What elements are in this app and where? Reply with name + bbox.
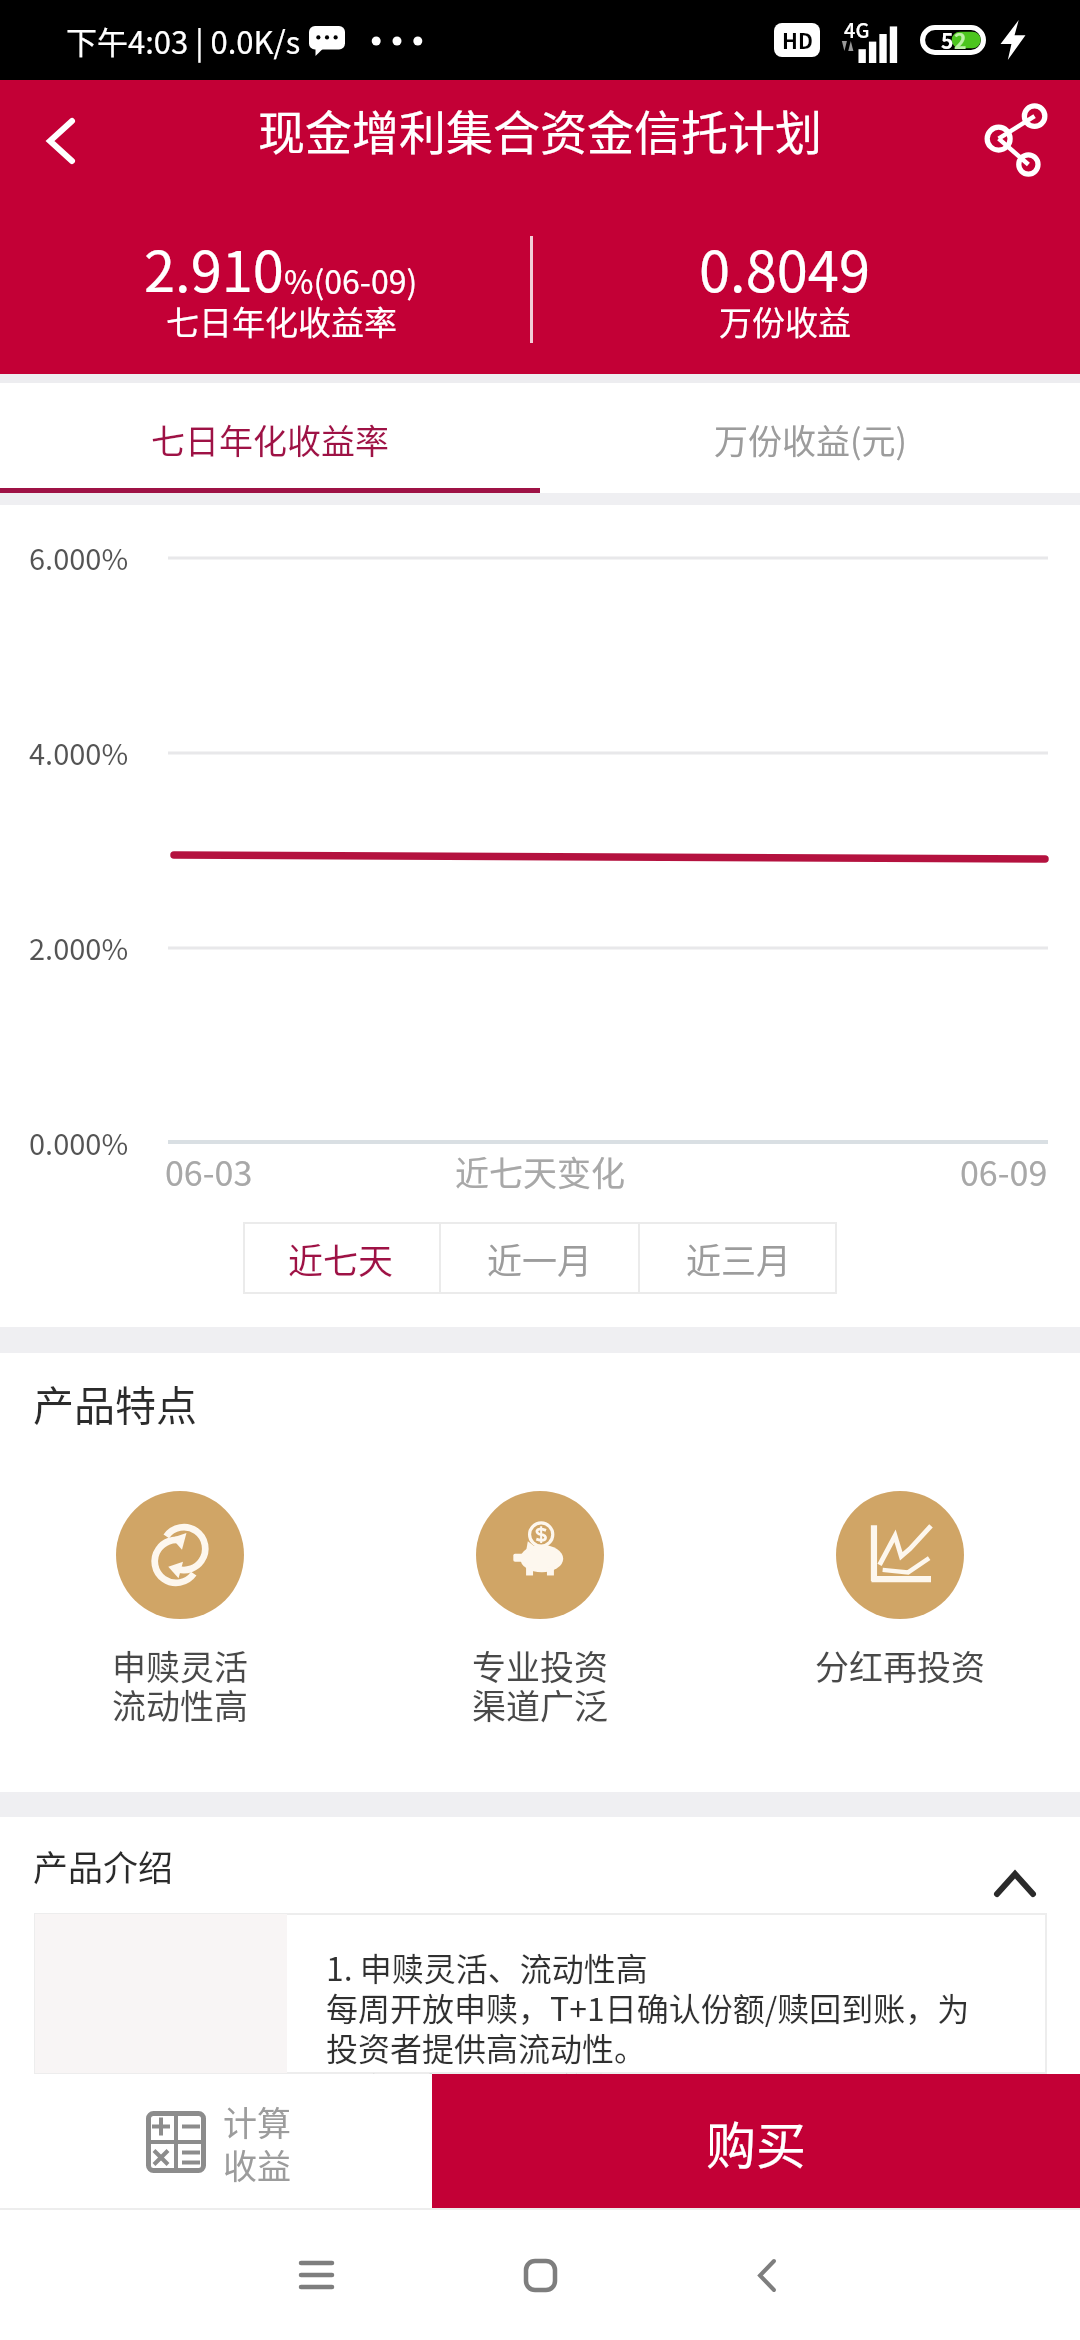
staticText: 2.910 [144,227,284,308]
staticText: 5 [941,25,954,55]
staticText: 产品介绍 [33,1840,174,1891]
staticText: 4G [844,15,870,44]
button[interactable]: Share [970,94,1062,186]
button[interactable]: 购买 [432,2074,1080,2210]
staticText: 现金增利集合资金信托计划 [258,95,822,163]
button[interactable]: Home [476,2210,604,2340]
staticText: 下午4:03 | 0.0K/s [66,18,301,63]
button[interactable]: 计算 收益 [146,2074,291,2210]
staticText: 2.000% [29,926,129,968]
staticText: 申赎灵活 流动性高 [112,1641,248,1729]
staticText: 06-03 [165,1147,253,1196]
staticText: %(06-09) [284,257,418,303]
staticText: 近三月 [686,1233,792,1284]
staticText: 06-09 [960,1147,1048,1196]
staticText: 万份收益 [719,297,851,345]
staticText: 近一月 [487,1233,593,1284]
staticText: 购买 [706,2106,806,2178]
staticText: 计算 收益 [223,2097,291,2188]
staticText: 专业投资 渠道广泛 [472,1641,608,1729]
staticText: 近七天 [288,1233,394,1284]
staticText: HD [782,25,813,55]
staticText: 0.8049 [699,227,870,308]
staticText: 1. 申赎灵活、流动性高 每周开放申赎，T+1日确认份额/赎回到账，为 投资者提… [326,1944,970,2110]
staticText: 4.000% [29,731,129,773]
button[interactable]: 近一月 [441,1222,638,1294]
button[interactable]: Recent apps [252,2210,380,2340]
staticText: 产品特点 [33,1373,197,1432]
button[interactable]: 近七天 [243,1222,439,1294]
staticText: 0.000% [29,1121,129,1163]
button[interactable]: 万份收益(元) [540,382,1080,496]
staticText: 七日年化收益率 [151,415,389,464]
button[interactable]: 七日年化收益率 [0,382,540,496]
staticText: 七日年化收益率 [166,297,397,345]
staticText: 分红再投资 [815,1641,985,1690]
staticText: 万份收益(元) [714,415,907,464]
button[interactable]: Back [703,2210,831,2340]
staticText: 6.000% [29,536,129,578]
staticText: 2 [954,25,967,55]
button[interactable]: 近三月 [640,1222,837,1294]
button[interactable]: Collapse [981,1850,1049,1918]
staticText: 近七天变化 [455,1147,625,1196]
button[interactable]: Back [12,93,108,189]
